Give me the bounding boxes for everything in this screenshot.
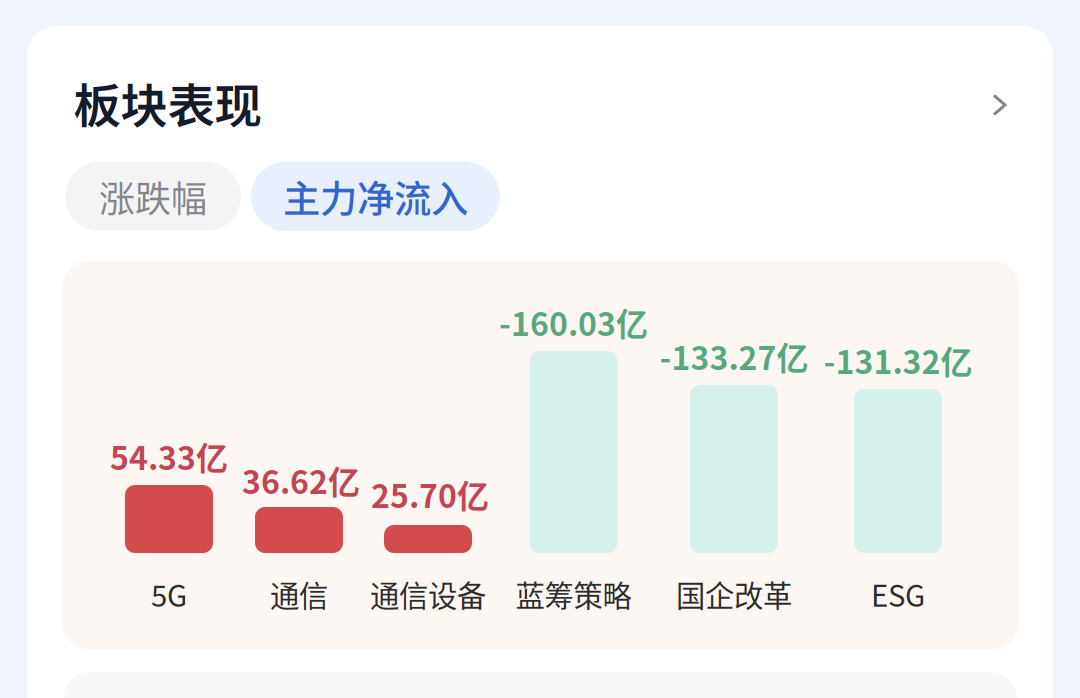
staticText: 25.70亿 [371, 471, 489, 517]
button[interactable]: 板块表现 [27, 26, 1053, 176]
staticText: ESG [871, 573, 925, 615]
staticText: 5G [151, 573, 187, 615]
staticText: -133.27亿 [659, 333, 808, 379]
button[interactable]: 涨跌幅 [65, 162, 241, 231]
staticText: 54.33亿 [110, 433, 228, 479]
button[interactable]: 主力净流入 [251, 162, 500, 231]
staticText: 蓝筹策略 [515, 573, 631, 615]
staticText: 通信设备 [370, 573, 486, 615]
staticText: 板块表现 [73, 68, 261, 137]
staticText: 通信 [270, 573, 328, 615]
staticText: 主力净流入 [283, 169, 468, 224]
staticText: 涨跌幅 [99, 170, 207, 222]
staticText: -160.03亿 [499, 299, 648, 345]
staticText: 36.62亿 [242, 457, 360, 503]
staticText: -131.32亿 [823, 337, 972, 383]
staticText: 国企改革 [676, 573, 792, 615]
